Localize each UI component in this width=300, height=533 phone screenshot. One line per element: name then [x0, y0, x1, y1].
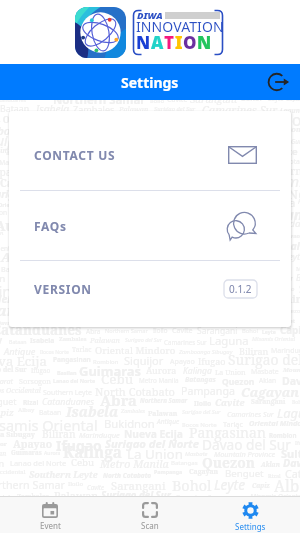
staticText: VERSION: [34, 281, 92, 297]
staticText: Settings: [121, 73, 179, 92]
staticText: N: [197, 31, 212, 54]
button[interactable]: FAQs: [9, 191, 291, 260]
staticText: T: [164, 31, 175, 54]
staticText: Event: [40, 520, 61, 531]
staticText: I: [175, 31, 183, 54]
button[interactable]: Event: [0, 497, 100, 533]
staticText: INNOVATION: [136, 17, 224, 36]
staticText: A: [151, 31, 164, 54]
staticText: CONTACT US: [34, 147, 116, 163]
staticText: FAQs: [34, 218, 67, 234]
button[interactable]: VERSION: [9, 261, 291, 316]
staticText: N: [136, 31, 151, 54]
staticText: DIWA: [137, 9, 163, 22]
staticText: O: [183, 31, 197, 54]
staticText: Scan: [141, 520, 159, 531]
button[interactable]: Scan: [100, 497, 200, 533]
staticText: 0.1.2: [229, 282, 252, 296]
button[interactable]: Settings: [200, 497, 300, 533]
staticText: Settings: [235, 521, 266, 532]
button[interactable]: CONTACT US: [9, 120, 291, 190]
button[interactable]: Log out: [265, 68, 293, 96]
